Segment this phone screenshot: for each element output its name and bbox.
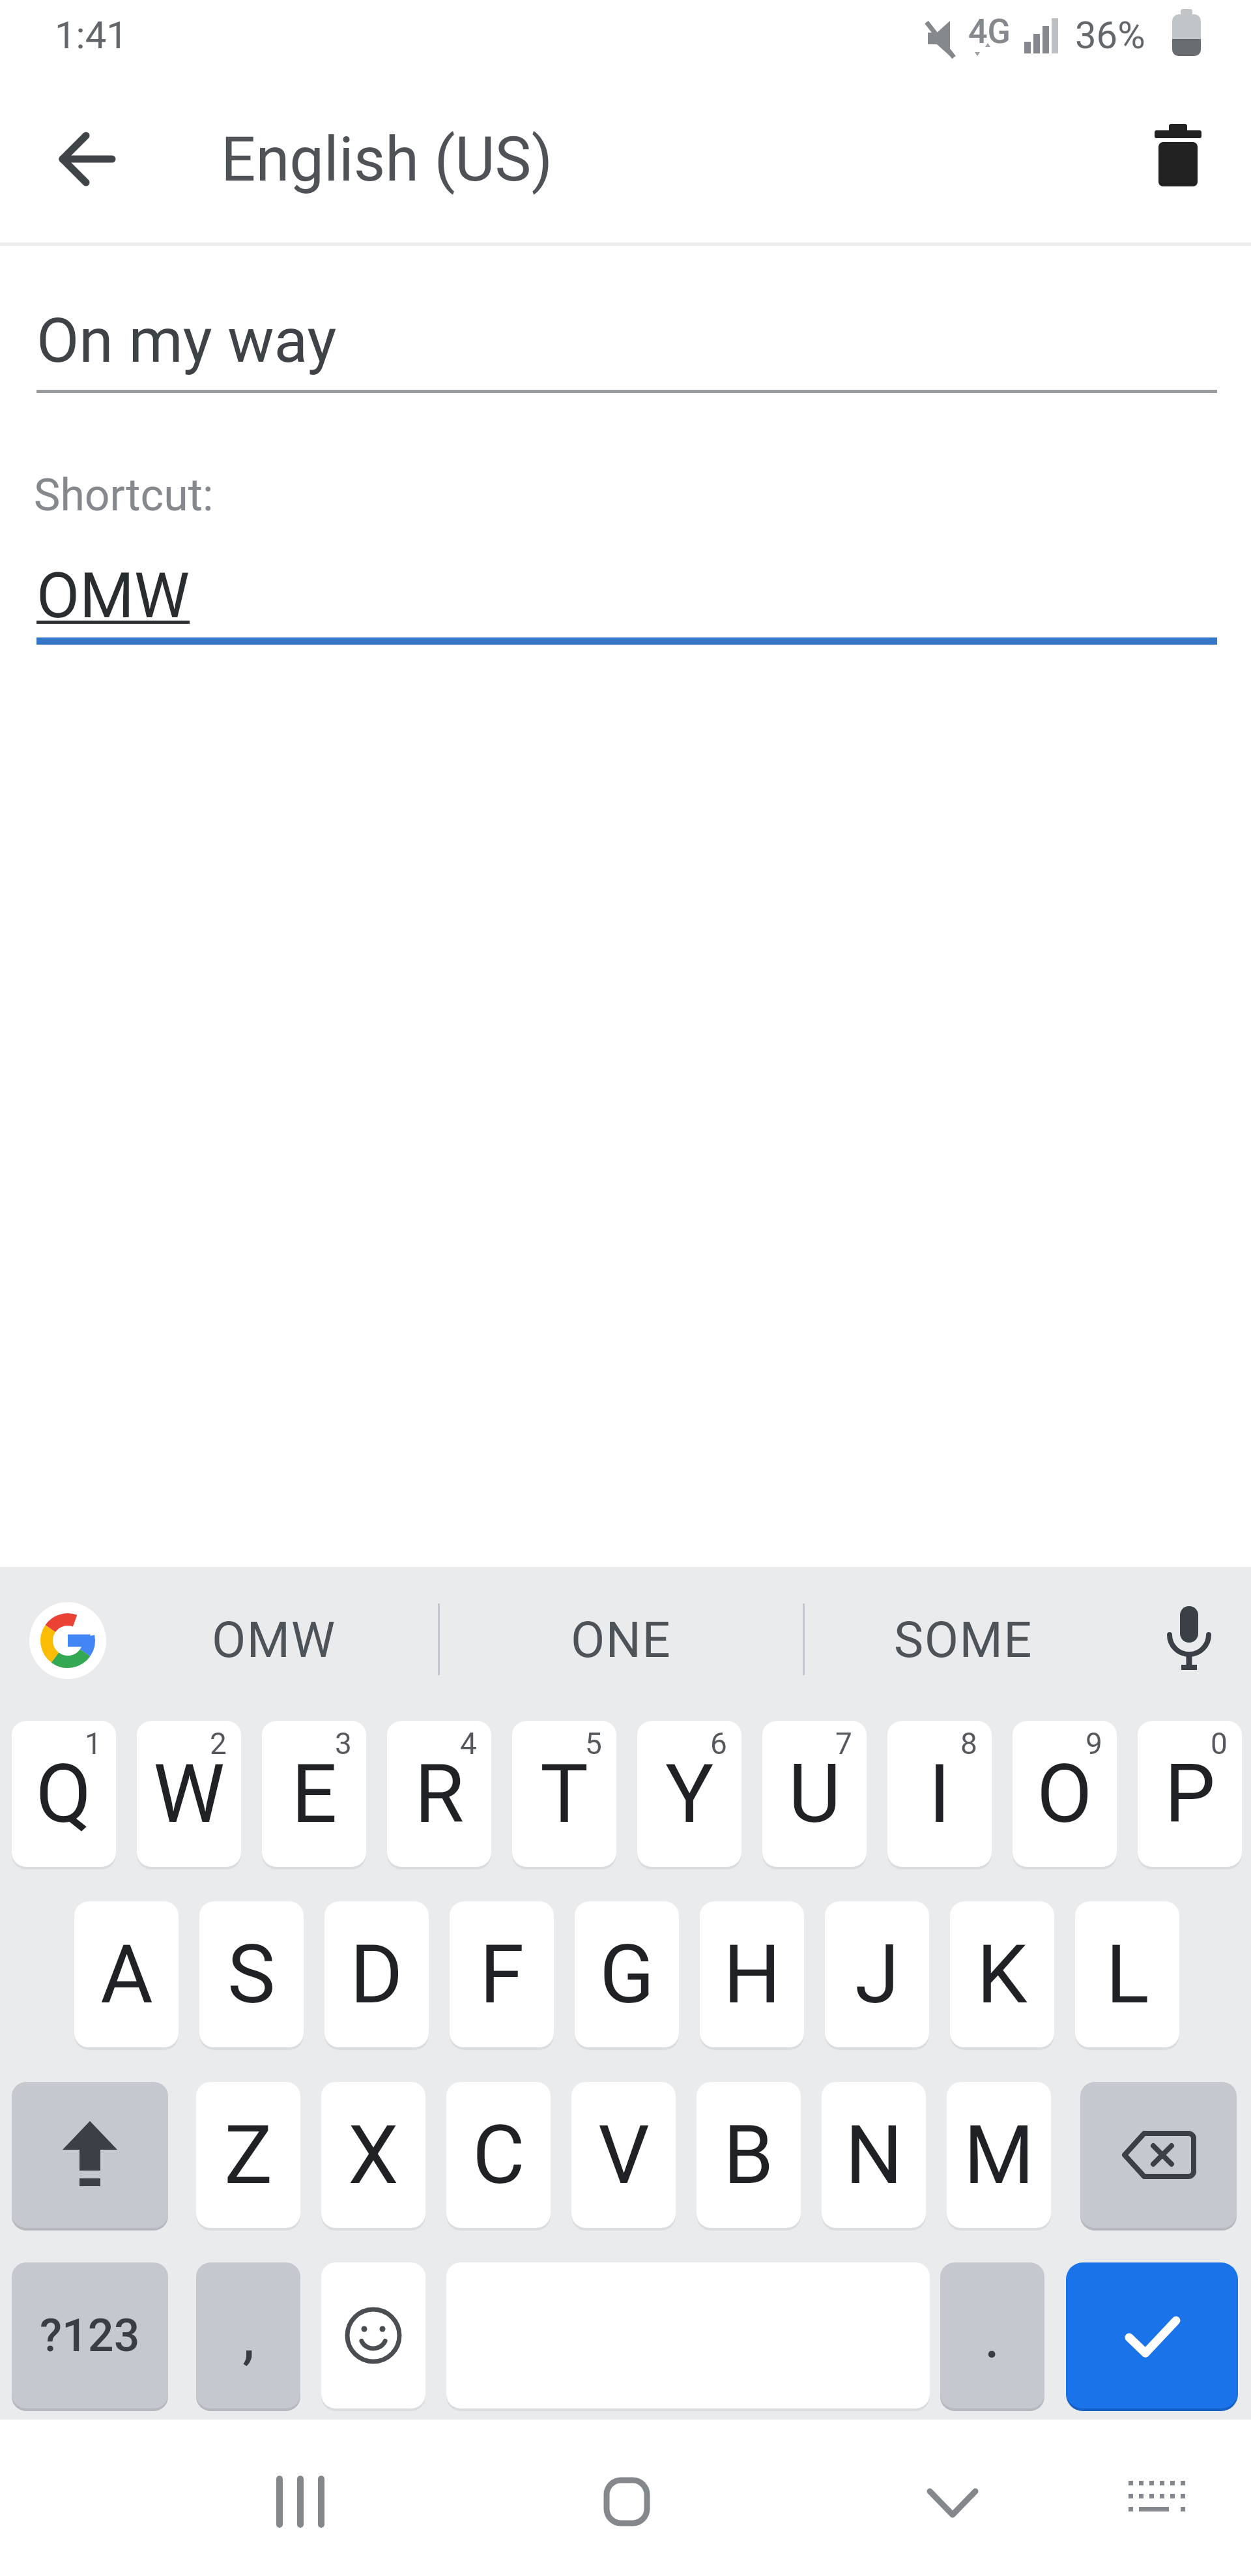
staticText: 4G <box>968 12 1011 48</box>
staticText: , <box>242 2299 255 2373</box>
staticText: J <box>855 1927 900 2022</box>
staticText: K <box>977 1927 1028 2022</box>
button[interactable]: H <box>700 1901 804 2047</box>
staticText: M <box>964 2108 1035 2203</box>
staticText: Z <box>224 2108 273 2203</box>
staticText: W <box>153 1747 225 1841</box>
button[interactable] <box>1080 2082 1237 2228</box>
button[interactable] <box>1066 2262 1238 2408</box>
staticText: 1:41 <box>55 13 128 57</box>
button[interactable]: G <box>575 1901 679 2047</box>
staticText: T <box>540 1747 588 1841</box>
staticText: 4 <box>460 1726 477 1761</box>
staticText: Shortcut: <box>34 469 214 521</box>
staticText: X <box>348 2108 399 2203</box>
button[interactable]: ?123 <box>12 2262 168 2408</box>
button[interactable] <box>46 117 129 201</box>
button[interactable]: U <box>762 1721 867 1867</box>
staticText: 0 <box>1211 1726 1228 1761</box>
button[interactable] <box>12 2082 168 2228</box>
staticText: English (US) <box>221 124 553 196</box>
staticText: SOME <box>894 1611 1033 1669</box>
staticText: C <box>472 2108 525 2203</box>
staticText: F <box>480 1927 525 2022</box>
button[interactable] <box>586 2464 667 2542</box>
staticText: D <box>350 1927 403 2022</box>
staticText: 5 <box>585 1726 602 1761</box>
staticText: U <box>788 1747 841 1841</box>
button[interactable]: Y <box>637 1721 741 1867</box>
staticText: On my way <box>36 304 337 377</box>
staticText: B <box>723 2108 774 2203</box>
button[interactable]: SOME <box>865 1584 1061 1695</box>
button[interactable]: C <box>446 2082 551 2228</box>
button[interactable]: B <box>697 2082 801 2228</box>
button[interactable]: N <box>822 2082 926 2228</box>
staticText: H <box>723 1927 781 2022</box>
button[interactable]: ONE <box>523 1584 719 1695</box>
button[interactable]: E <box>262 1721 366 1867</box>
staticText: 6 <box>710 1726 727 1761</box>
button[interactable] <box>29 1602 106 1679</box>
staticText: G <box>599 1927 655 2022</box>
button[interactable]: K <box>950 1901 1054 2047</box>
button[interactable]: W <box>137 1721 241 1867</box>
staticText: E <box>291 1747 338 1841</box>
staticText: ONE <box>571 1611 672 1669</box>
button[interactable]: X <box>321 2082 425 2228</box>
button[interactable]: O <box>1013 1721 1117 1867</box>
staticText: 3 <box>335 1726 352 1761</box>
staticText: Y <box>665 1747 714 1841</box>
staticText: 7 <box>835 1726 852 1761</box>
staticText: S <box>227 1927 276 2022</box>
staticText: . <box>984 2299 1001 2373</box>
staticText: P <box>1164 1747 1216 1841</box>
button[interactable]: I <box>887 1721 992 1867</box>
staticText: L <box>1106 1927 1149 2022</box>
staticText: I <box>928 1747 951 1841</box>
staticText: 2 <box>210 1726 227 1761</box>
staticText: 9 <box>1086 1726 1102 1761</box>
staticText: 1 <box>85 1726 102 1761</box>
button[interactable]: F <box>450 1901 554 2047</box>
staticText: R <box>414 1747 465 1841</box>
button[interactable]: D <box>324 1901 429 2047</box>
button[interactable]: L <box>1075 1901 1179 2047</box>
button[interactable]: T <box>512 1721 616 1867</box>
button[interactable]: M <box>947 2082 1051 2228</box>
button[interactable]: OMW <box>176 1584 371 1695</box>
staticText: O <box>1037 1747 1093 1841</box>
staticText: N <box>845 2108 903 2203</box>
staticText: OMW <box>36 559 190 631</box>
staticText: Q <box>36 1747 92 1841</box>
button[interactable] <box>1160 1597 1218 1682</box>
staticText: A <box>100 1927 153 2022</box>
button[interactable]: A <box>74 1901 179 2047</box>
staticText: OMW <box>212 1611 336 1669</box>
button[interactable] <box>1114 2464 1195 2542</box>
staticText: 8 <box>960 1726 977 1761</box>
button[interactable] <box>1144 117 1212 201</box>
button[interactable]: , <box>196 2262 300 2408</box>
button[interactable]: Q <box>12 1721 116 1867</box>
button[interactable]: Z <box>196 2082 300 2228</box>
button[interactable]: J <box>825 1901 929 2047</box>
button[interactable]: R <box>387 1721 491 1867</box>
button[interactable]: V <box>571 2082 676 2228</box>
staticText: 36% <box>1075 13 1145 57</box>
button[interactable]: P <box>1138 1721 1242 1867</box>
staticText: V <box>598 2108 650 2203</box>
button[interactable] <box>321 2262 425 2408</box>
button[interactable] <box>261 2464 341 2542</box>
button[interactable]: . <box>940 2262 1044 2408</box>
staticText: ?123 <box>40 2309 140 2362</box>
button[interactable] <box>912 2464 993 2542</box>
button[interactable]: S <box>199 1901 304 2047</box>
